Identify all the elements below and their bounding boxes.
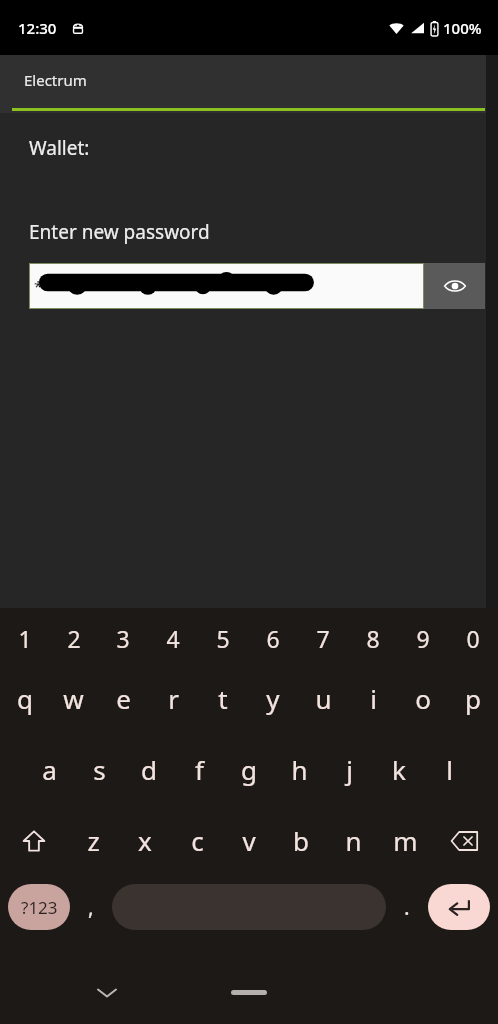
staticText: b — [293, 823, 309, 858]
button[interactable]: j — [324, 734, 374, 805]
staticText: e — [116, 681, 131, 716]
staticText: h — [291, 752, 308, 787]
button[interactable]: w — [49, 663, 98, 734]
staticText: m — [393, 823, 418, 858]
staticText: 0 — [466, 623, 480, 654]
staticText: Electrum — [24, 70, 87, 90]
button[interactable]: l — [424, 734, 474, 805]
button[interactable]: y — [248, 663, 298, 734]
staticText: a — [42, 752, 57, 787]
staticText: 9 — [416, 623, 430, 654]
staticText: f — [195, 752, 204, 787]
button[interactable]: n — [327, 805, 379, 876]
button[interactable]: a — [24, 734, 74, 805]
staticText: 5 — [216, 623, 230, 654]
button[interactable]: 4 — [148, 614, 198, 663]
button[interactable]: 7 — [298, 614, 348, 663]
button[interactable]: u — [298, 663, 348, 734]
staticText: l — [446, 752, 453, 787]
button[interactable]: t — [198, 663, 248, 734]
staticText: 2 — [67, 623, 81, 654]
staticText: n — [345, 823, 362, 858]
button[interactable]: 1 — [0, 614, 49, 663]
button[interactable]: r — [148, 663, 198, 734]
button[interactable]: m — [379, 805, 431, 876]
button[interactable]: i — [348, 663, 398, 734]
button[interactable]: , — [70, 876, 112, 938]
staticText: d — [141, 752, 157, 787]
button[interactable]: h — [274, 734, 324, 805]
staticText: 4 — [166, 623, 180, 654]
staticText: Wallet: — [29, 135, 90, 161]
staticText: , — [88, 893, 94, 922]
button[interactable]: 6 — [248, 614, 298, 663]
staticText: x — [138, 823, 152, 858]
staticText: w — [63, 681, 84, 716]
staticText: j — [346, 752, 353, 787]
button[interactable]: c — [171, 805, 223, 876]
button[interactable]: g — [224, 734, 274, 805]
button[interactable]: 3 — [98, 614, 148, 663]
button[interactable]: 5 — [198, 614, 248, 663]
button[interactable]: Hide keyboard — [90, 976, 124, 1010]
staticText: Enter new password — [29, 219, 210, 245]
staticText: u — [315, 681, 332, 716]
button[interactable]: x — [119, 805, 171, 876]
button[interactable]: v — [223, 805, 275, 876]
staticText: ** — [34, 276, 51, 296]
button[interactable]: o — [398, 663, 448, 734]
staticText: v — [242, 823, 256, 858]
staticText: 3 — [116, 623, 130, 654]
button[interactable]: Show password — [424, 263, 485, 309]
button[interactable]: ?123 — [8, 884, 70, 930]
staticText: 12:30 — [18, 18, 57, 38]
button[interactable]: e — [98, 663, 148, 734]
button[interactable]: Shift — [0, 805, 67, 876]
button[interactable]: 9 — [398, 614, 448, 663]
button[interactable]: d — [124, 734, 174, 805]
button[interactable]: Backspace — [431, 805, 498, 876]
staticText: i — [370, 681, 377, 716]
button[interactable]: b — [275, 805, 327, 876]
staticText: g — [241, 752, 257, 787]
button[interactable]: k — [374, 734, 424, 805]
button[interactable]: f — [174, 734, 224, 805]
staticText: 8 — [366, 623, 380, 654]
staticText: y — [266, 681, 280, 716]
button[interactable]: 0 — [448, 614, 498, 663]
staticText: k — [392, 752, 406, 787]
staticText: ?123 — [21, 896, 58, 919]
staticText: o — [415, 681, 431, 716]
button[interactable]: 2 — [49, 614, 98, 663]
staticText: t — [218, 681, 228, 716]
staticText: 1 — [18, 623, 32, 654]
staticText: s — [93, 752, 106, 787]
button[interactable]: . — [386, 876, 428, 938]
staticText: z — [87, 823, 100, 858]
staticText: c — [191, 823, 204, 858]
button[interactable]: z — [67, 805, 119, 876]
button[interactable]: Space — [112, 884, 386, 930]
staticText: . — [404, 893, 410, 922]
staticText: 6 — [266, 623, 280, 654]
button[interactable]: s — [74, 734, 124, 805]
button[interactable]: Enter — [428, 884, 490, 930]
button[interactable]: 8 — [348, 614, 398, 663]
staticText: r — [168, 681, 179, 716]
staticText: 7 — [316, 623, 330, 654]
staticText: 100% — [443, 18, 482, 38]
button[interactable]: ** — [30, 264, 423, 308]
staticText: p — [465, 681, 481, 716]
staticText: q — [17, 681, 33, 716]
button[interactable]: p — [448, 663, 498, 734]
button[interactable]: q — [0, 663, 49, 734]
